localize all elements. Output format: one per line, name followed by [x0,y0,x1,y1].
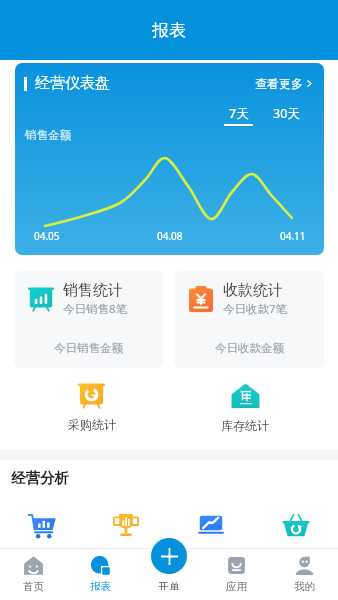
staticText: 库存统计 [221,418,269,433]
staticText: 采购统计 [68,417,116,432]
staticText: 报表 [152,20,186,41]
staticText: 04.08 [157,229,183,243]
staticText: 收款统计 [223,281,283,300]
staticText: 销售统计 [63,281,123,300]
staticText: 7天 [229,105,249,122]
staticText: 今日销售8笔 [63,301,128,317]
button[interactable]: 销售统计 [14,271,163,368]
button[interactable]: 查看更多 [255,74,313,93]
staticText: 查看更多 [255,76,303,91]
button[interactable]: 收款统计 [174,271,324,368]
button[interactable]: 应用 [202,548,270,600]
button[interactable]: 采购统计 [15,382,168,432]
staticText: 经营分析 [11,469,69,487]
button[interactable]: 报表 [67,548,134,600]
button[interactable]: 开单 [151,538,187,574]
staticText: 04.11 [280,229,306,243]
button[interactable]: 7天 [224,105,253,126]
staticText: 报表 [90,580,111,593]
button[interactable]: 首页 [0,548,67,600]
button[interactable]: 排行榜 [84,511,168,539]
staticText: 开单 [158,580,180,590]
staticText: 应用 [226,580,247,593]
button[interactable]: 销售分析 [0,511,84,539]
staticText: 销售金额 [25,128,71,142]
staticText: 今日销售金额 [54,341,123,355]
staticText: 我的 [294,580,315,593]
button[interactable]: 采购分析 [253,511,338,539]
staticText: 经营仪表盘 [35,74,110,93]
button[interactable]: 趋势分析 [168,511,253,539]
button[interactable]: 30天 [273,105,300,122]
staticText: 今日收款7笔 [223,301,288,317]
staticText: 30天 [273,105,300,122]
staticText: 首页 [23,580,44,593]
staticText: 今日收款金额 [215,341,284,355]
button[interactable]: 我的 [270,548,338,600]
button[interactable]: 库存统计 [168,382,322,433]
staticText: 04.05 [34,229,60,243]
